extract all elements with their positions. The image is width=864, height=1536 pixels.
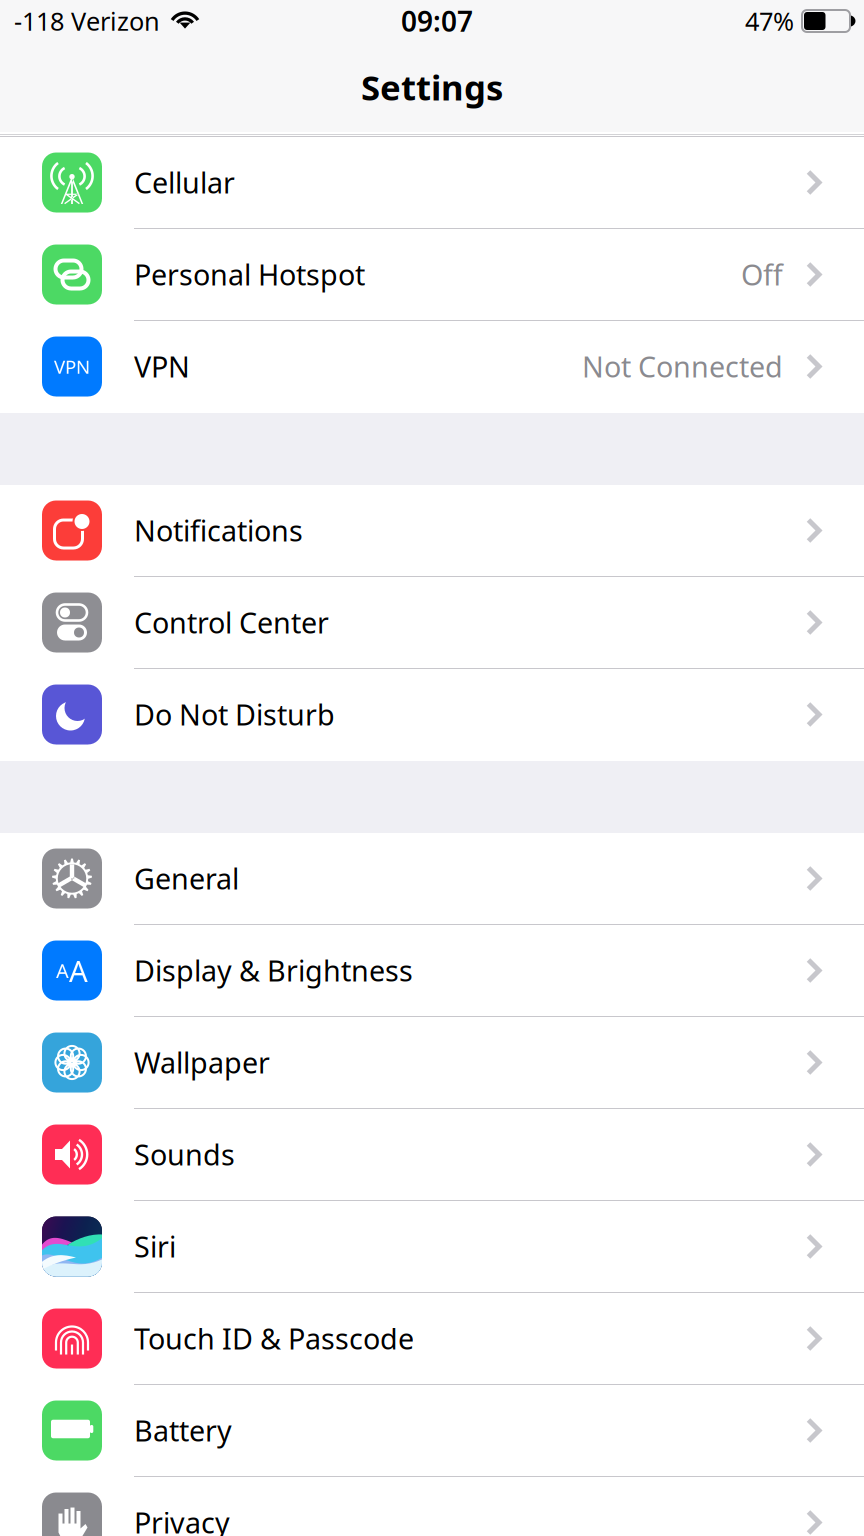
staticText: Battery — [134, 1411, 232, 1450]
staticText: Control Center — [134, 603, 329, 642]
staticText: Privacy — [134, 1503, 230, 1536]
staticText: Notifications — [134, 511, 303, 550]
staticText: 47% — [745, 4, 794, 38]
staticText: General — [134, 859, 239, 898]
button[interactable]: Control Center — [0, 577, 864, 669]
staticText: Cellular — [134, 163, 235, 202]
staticText: Not Connected — [582, 347, 783, 386]
button[interactable]: Sounds — [0, 1109, 864, 1201]
button[interactable]: A — [0, 925, 864, 1017]
button[interactable]: Battery — [0, 1385, 864, 1477]
staticText: Touch ID & Passcode — [134, 1319, 414, 1358]
staticText: -118 Verizon — [14, 4, 160, 38]
button[interactable]: Personal Hotspot — [0, 229, 864, 321]
staticText: Settings — [361, 63, 503, 111]
button[interactable]: Notifications — [0, 485, 864, 577]
button[interactable]: Cellular — [0, 137, 864, 229]
staticText: Siri — [134, 1227, 176, 1266]
button[interactable]: Do Not Disturb — [0, 669, 864, 761]
staticText: Sounds — [134, 1135, 235, 1174]
staticText: A — [56, 957, 69, 984]
staticText: Display & Brightness — [134, 951, 413, 990]
staticText: 09:07 — [401, 2, 473, 40]
button[interactable]: Touch ID & Passcode — [0, 1293, 864, 1385]
button[interactable]: Siri — [0, 1201, 864, 1293]
staticText: VPN — [54, 354, 90, 379]
staticText: A — [69, 950, 88, 990]
staticText: Off — [741, 255, 783, 294]
staticText: VPN — [134, 347, 190, 386]
button[interactable]: Wallpaper — [0, 1017, 864, 1109]
staticText: Wallpaper — [134, 1043, 270, 1082]
staticText: Do Not Disturb — [134, 695, 335, 734]
button[interactable]: General — [0, 833, 864, 925]
staticText: Personal Hotspot — [134, 255, 365, 294]
button[interactable]: VPN — [0, 321, 864, 413]
button[interactable]: Privacy — [0, 1477, 864, 1536]
